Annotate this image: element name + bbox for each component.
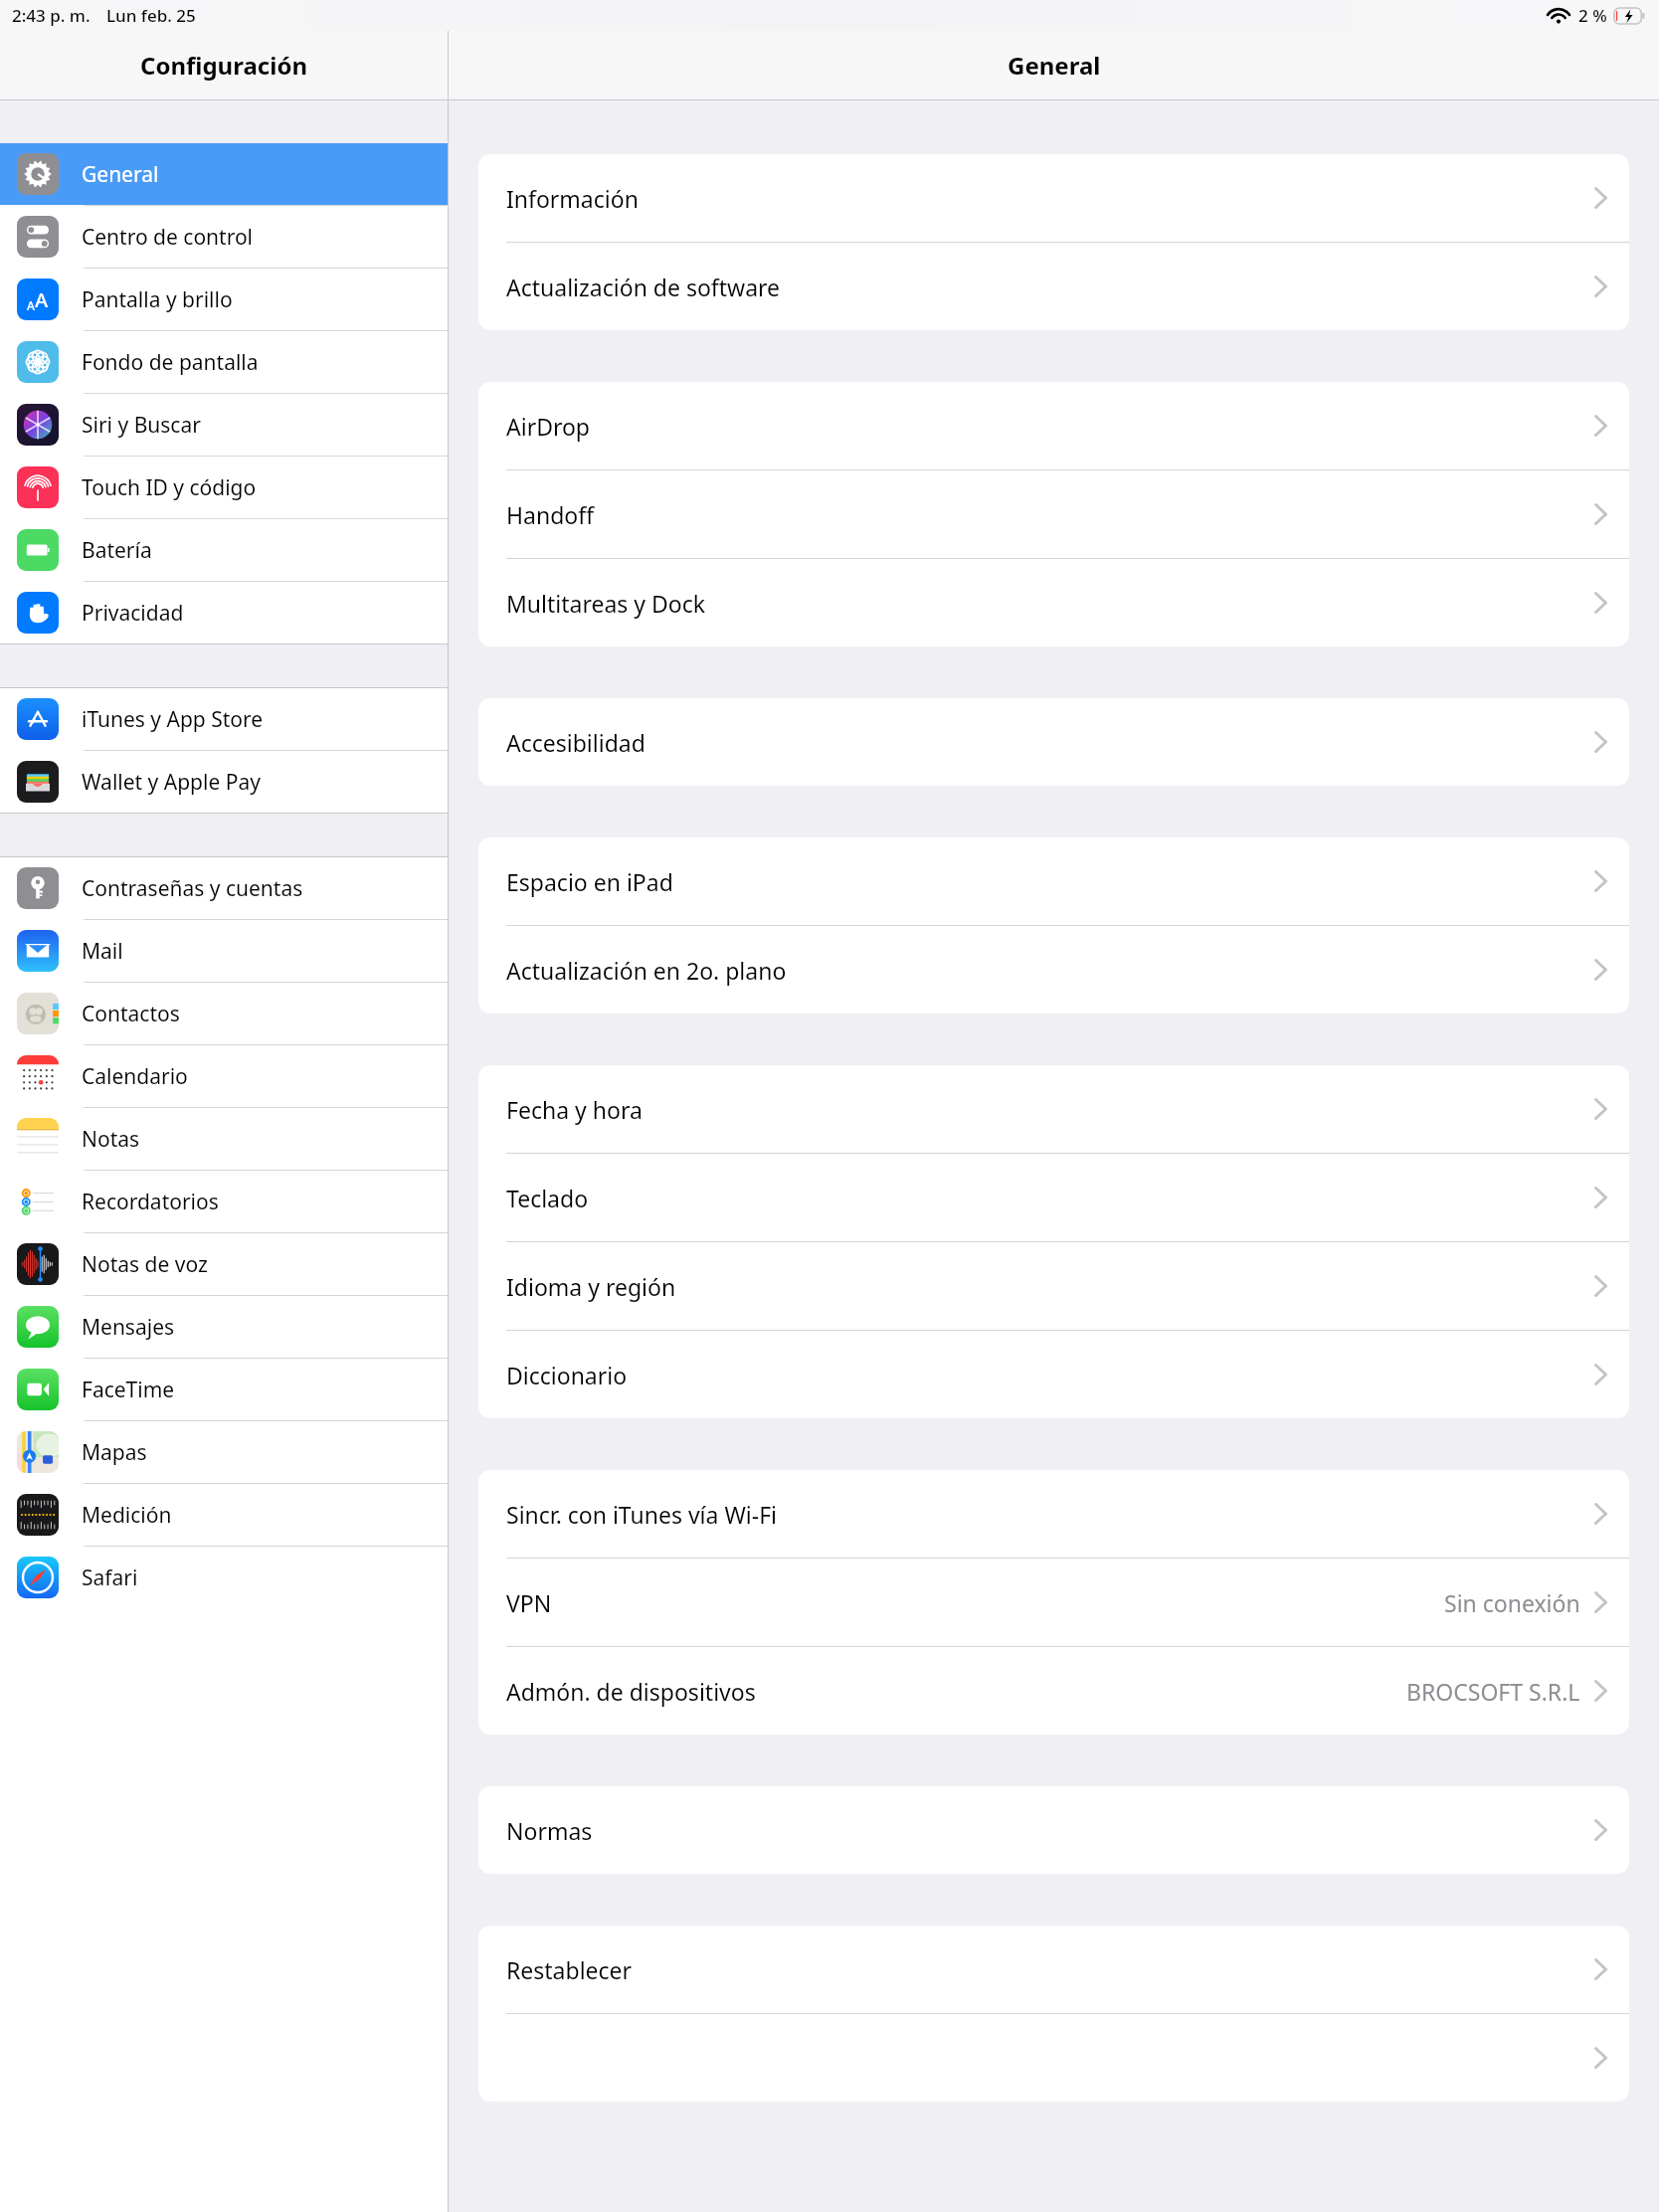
staticText: Accesibilidad [506,727,645,758]
staticText: Calendario [82,1062,188,1091]
staticText: Notas de voz [82,1250,208,1279]
staticText: Touch ID y código [82,473,257,502]
button[interactable]: Actualización en 2o. plano [478,926,1629,1014]
staticText: Admón. de dispositivos [506,1676,756,1707]
staticText: Notas [82,1125,140,1154]
staticText: Sincr. con iTunes vía Wi-Fi [506,1499,777,1530]
staticText: Fondo de pantalla [82,348,259,377]
button[interactable]: Accesibilidad [478,698,1629,786]
button[interactable]: Wallet y Apple Pay [0,751,448,813]
button[interactable]: AirDrop [478,382,1629,469]
staticText: Siri y Buscar [82,411,201,440]
staticText: Handoff [506,499,595,530]
button[interactable]: General [0,143,448,205]
staticText: Mail [82,937,123,966]
button[interactable]: Batería [0,519,448,581]
staticText: A [35,286,49,313]
staticText: Mensajes [82,1313,175,1342]
staticText: AirDrop [506,411,591,442]
staticText: FaceTime [82,1376,175,1404]
staticText: BROCSOFT S.R.L [1406,1676,1580,1707]
staticText: General [82,160,159,189]
button[interactable]: Mapas [0,1421,448,1483]
button[interactable]: Notas de voz [0,1233,448,1295]
button[interactable]: Calendario [0,1045,448,1107]
button[interactable]: Fondo de pantalla [0,331,448,393]
staticText: 2:43 p. m. [12,4,91,27]
button[interactable]: Diccionario [478,1331,1629,1418]
staticText: Mapas [82,1438,147,1467]
button[interactable]: Normas [478,1786,1629,1874]
staticText: Recordatorios [82,1188,219,1216]
staticText: Privacidad [82,599,184,628]
button[interactable]: Espacio en iPad [478,837,1629,925]
button[interactable]: Touch ID y código [0,457,448,518]
staticText: iTunes y App Store [82,705,264,734]
staticText: Actualización de software [506,272,781,302]
staticText: Sin conexión [1444,1587,1580,1618]
staticText: Espacio en iPad [506,866,673,897]
staticText: Fecha y hora [506,1094,643,1125]
staticText: Contraseñas y cuentas [82,874,303,903]
button[interactable]: iTunes y App Store [0,688,448,750]
staticText: Pantalla y brillo [82,285,233,314]
staticText: Safari [82,1564,138,1592]
staticText: Lun feb. 25 [106,4,196,27]
button[interactable]: Sincr. con iTunes vía Wi-Fi [478,1470,1629,1558]
button[interactable]: Siri y Buscar [0,394,448,456]
button[interactable]: Multitareas y Dock [478,559,1629,646]
staticText: General [1008,49,1101,82]
staticText: Wallet y Apple Pay [82,768,261,797]
staticText: Centro de control [82,223,254,252]
button[interactable]: Mail [0,920,448,982]
staticText: Teclado [506,1183,589,1213]
button[interactable]: Contactos [0,983,448,1044]
button[interactable]: Contraseñas y cuentas [0,857,448,919]
staticText: Diccionario [506,1360,628,1390]
button[interactable]: VPN [478,1559,1629,1646]
button[interactable]: Handoff [478,470,1629,558]
button[interactable] [478,2014,1629,2102]
button[interactable]: Idioma y región [478,1242,1629,1330]
staticText: Medición [82,1501,172,1530]
button[interactable]: Mensajes [0,1296,448,1358]
staticText: Actualización en 2o. plano [506,955,787,986]
staticText: Multitareas y Dock [506,588,706,619]
staticText: Batería [82,536,152,565]
button[interactable]: Admón. de dispositivos [478,1647,1629,1735]
staticText: A [27,297,35,313]
button[interactable]: FaceTime [0,1359,448,1420]
button[interactable]: Recordatorios [0,1171,448,1232]
button[interactable]: Teclado [478,1154,1629,1241]
staticText: 2 % [1578,4,1607,27]
staticText: Idioma y región [506,1271,676,1302]
staticText: Información [506,183,639,214]
button[interactable]: Medición [0,1484,448,1546]
staticText: Configuración [140,49,307,82]
button[interactable]: Notas [0,1108,448,1170]
button[interactable]: Centro de control [0,206,448,268]
staticText: Normas [506,1815,593,1846]
button[interactable]: Fecha y hora [478,1065,1629,1153]
staticText: Restablecer [506,1954,633,1985]
button[interactable]: Información [478,154,1629,242]
button[interactable]: Actualización de software [478,243,1629,330]
button[interactable]: Safari [0,1547,448,1608]
staticText: VPN [506,1587,552,1618]
button[interactable]: A [0,269,448,330]
staticText: Contactos [82,1000,180,1028]
button[interactable]: Privacidad [0,582,448,644]
button[interactable]: Restablecer [478,1926,1629,2013]
